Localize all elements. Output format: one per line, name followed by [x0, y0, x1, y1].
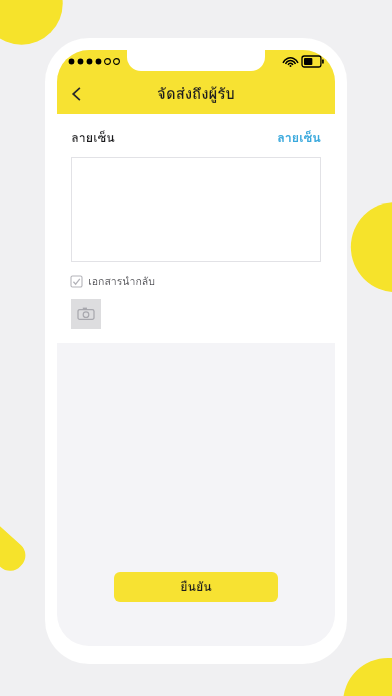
button[interactable] — [71, 157, 321, 262]
button[interactable]: Back — [57, 74, 97, 114]
button[interactable]: Take photo — [71, 299, 101, 329]
staticText: ลายเซ็น — [71, 128, 115, 148]
button[interactable]: ยืนยัน — [114, 572, 278, 602]
staticText: จัดส่งถึงผู้รับ — [157, 82, 235, 106]
button[interactable]: เอกสารนำกลับ — [71, 273, 155, 290]
staticText: เอกสารนำกลับ — [88, 273, 155, 290]
button[interactable]: ลายเซ็น — [277, 128, 321, 148]
staticText: ยืนยัน — [180, 577, 212, 597]
staticText: ลายเซ็น — [277, 128, 321, 148]
